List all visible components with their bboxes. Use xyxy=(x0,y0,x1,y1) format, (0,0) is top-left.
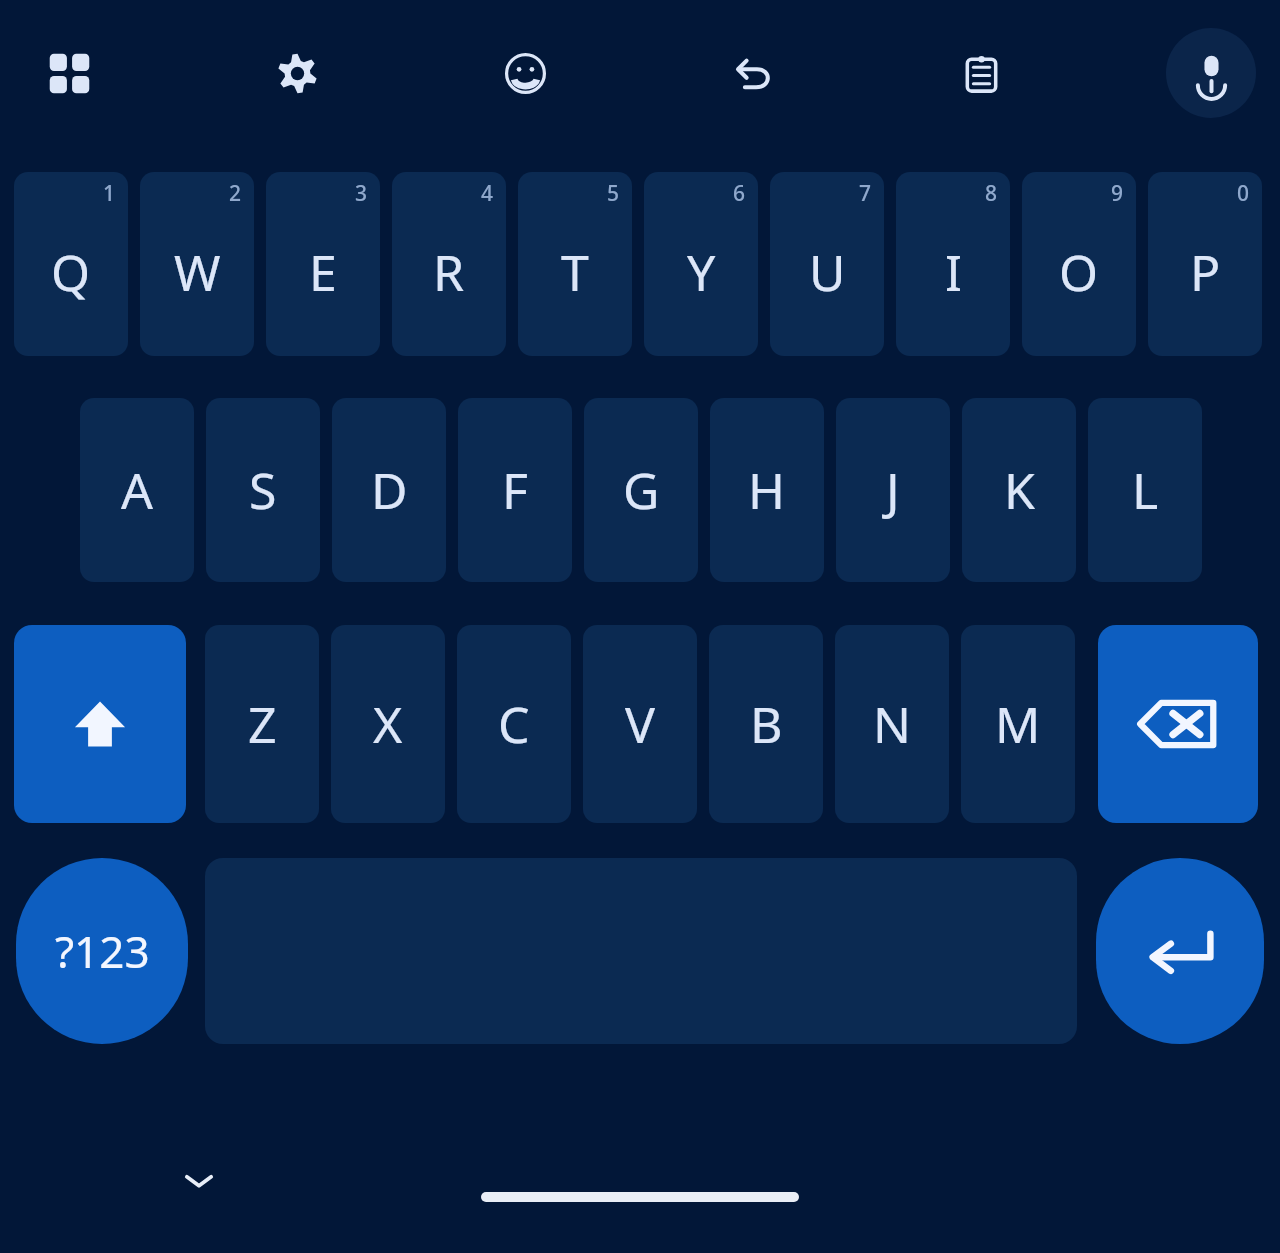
staticText: G xyxy=(623,456,660,524)
staticText: S xyxy=(249,456,277,524)
button[interactable]: Voice input xyxy=(1166,28,1256,118)
staticText: 2 xyxy=(224,179,246,207)
staticText: J xyxy=(886,456,900,524)
button[interactable]: 3 xyxy=(266,172,380,356)
button[interactable]: S xyxy=(206,398,320,582)
staticText: 4 xyxy=(476,179,498,207)
staticText: L xyxy=(1132,456,1159,524)
button[interactable]: G xyxy=(584,398,698,582)
staticText: A xyxy=(121,456,153,524)
button[interactable]: 8 xyxy=(896,172,1010,356)
staticText: Y xyxy=(687,238,716,306)
staticText: 5 xyxy=(602,179,624,207)
staticText: T xyxy=(561,238,589,306)
button[interactable]: A xyxy=(80,398,194,582)
staticText: N xyxy=(873,690,911,758)
button[interactable]: K xyxy=(962,398,1076,582)
staticText: 3 xyxy=(350,179,372,207)
button[interactable]: 6 xyxy=(644,172,758,356)
button[interactable]: N xyxy=(835,625,949,823)
staticText: F xyxy=(502,456,528,524)
staticText: I xyxy=(945,238,962,306)
button[interactable]: 7 xyxy=(770,172,884,356)
button[interactable]: C xyxy=(457,625,571,823)
staticText: 6 xyxy=(728,179,750,207)
staticText: U xyxy=(809,238,846,306)
button[interactable]: Hide keyboard xyxy=(168,1152,230,1210)
button[interactable]: Shift xyxy=(14,625,186,823)
staticText: D xyxy=(371,456,408,524)
button[interactable]: Settings xyxy=(256,32,338,114)
button[interactable]: Keyboard layouts xyxy=(28,32,110,114)
button[interactable]: 5 xyxy=(518,172,632,356)
button[interactable]: M xyxy=(961,625,1075,823)
button[interactable]: V xyxy=(583,625,697,823)
button[interactable]: Backspace xyxy=(1098,625,1258,823)
staticText: B xyxy=(750,690,783,758)
button[interactable]: J xyxy=(836,398,950,582)
button[interactable]: L xyxy=(1088,398,1202,582)
staticText: Z xyxy=(248,690,277,758)
button[interactable]: X xyxy=(331,625,445,823)
staticText: P xyxy=(1190,238,1221,306)
button[interactable]: Undo xyxy=(712,32,794,114)
button[interactable]: Emoji xyxy=(484,32,566,114)
staticText: 9 xyxy=(1106,179,1128,207)
button[interactable]: D xyxy=(332,398,446,582)
staticText: X xyxy=(373,690,403,758)
staticText: W xyxy=(174,238,221,306)
staticText: C xyxy=(498,690,530,758)
button[interactable]: 4 xyxy=(392,172,506,356)
button[interactable]: 2 xyxy=(140,172,254,356)
button[interactable]: F xyxy=(458,398,572,582)
button[interactable]: Clipboard xyxy=(940,32,1022,114)
button[interactable]: Enter xyxy=(1096,858,1264,1044)
staticText: V xyxy=(625,690,655,758)
staticText: H xyxy=(748,456,786,524)
button[interactable]: B xyxy=(709,625,823,823)
staticText: 0 xyxy=(1232,179,1254,207)
button[interactable]: Z xyxy=(205,625,319,823)
staticText: O xyxy=(1059,238,1099,306)
staticText: E xyxy=(309,238,337,306)
staticText: M xyxy=(995,690,1041,758)
staticText: 1 xyxy=(98,179,120,207)
staticText: R xyxy=(433,238,465,306)
staticText: 8 xyxy=(980,179,1002,207)
button[interactable]: H xyxy=(710,398,824,582)
button[interactable]: ?123 xyxy=(16,858,188,1044)
button[interactable]: 9 xyxy=(1022,172,1136,356)
staticText: ?123 xyxy=(55,921,150,981)
staticText: Q xyxy=(51,238,91,306)
staticText: K xyxy=(1004,456,1035,524)
button[interactable]: 1 xyxy=(14,172,128,356)
staticText: 7 xyxy=(854,179,876,207)
button[interactable]: 0 xyxy=(1148,172,1262,356)
